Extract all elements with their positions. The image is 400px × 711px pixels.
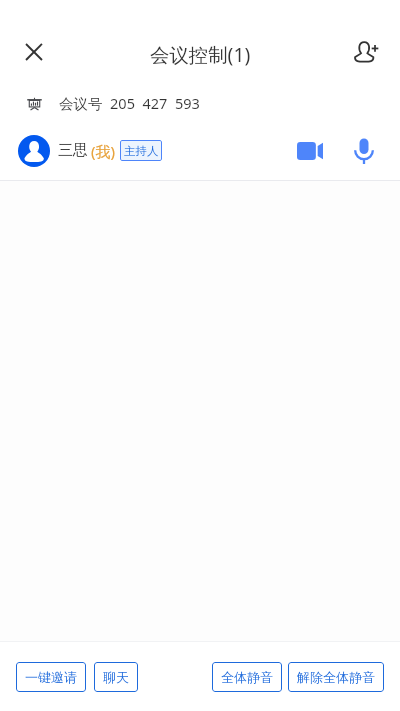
button[interactable]: 一键邀请 (16, 662, 86, 692)
staticText: 三思 (58, 141, 88, 160)
button[interactable]: Camera (288, 133, 332, 169)
staticText: 会议号 205 427 593 (59, 93, 200, 113)
button[interactable]: 三思 (0, 130, 400, 171)
button[interactable]: 解除全体静音 (288, 662, 384, 692)
staticText: 全体静音 (221, 669, 273, 685)
staticText: (我) (91, 141, 116, 161)
button[interactable]: Microphone (348, 132, 380, 170)
staticText: 聊天 (103, 669, 129, 685)
staticText: 主持人 (124, 144, 159, 158)
button[interactable]: 全体静音 (212, 662, 282, 692)
button[interactable]: Close (13, 31, 54, 72)
staticText: 一键邀请 (25, 669, 77, 685)
staticText: 会议控制(1) (150, 41, 251, 67)
button[interactable]: Add participant (346, 31, 387, 72)
staticText: 解除全体静音 (297, 669, 375, 685)
button[interactable]: 聊天 (94, 662, 138, 692)
